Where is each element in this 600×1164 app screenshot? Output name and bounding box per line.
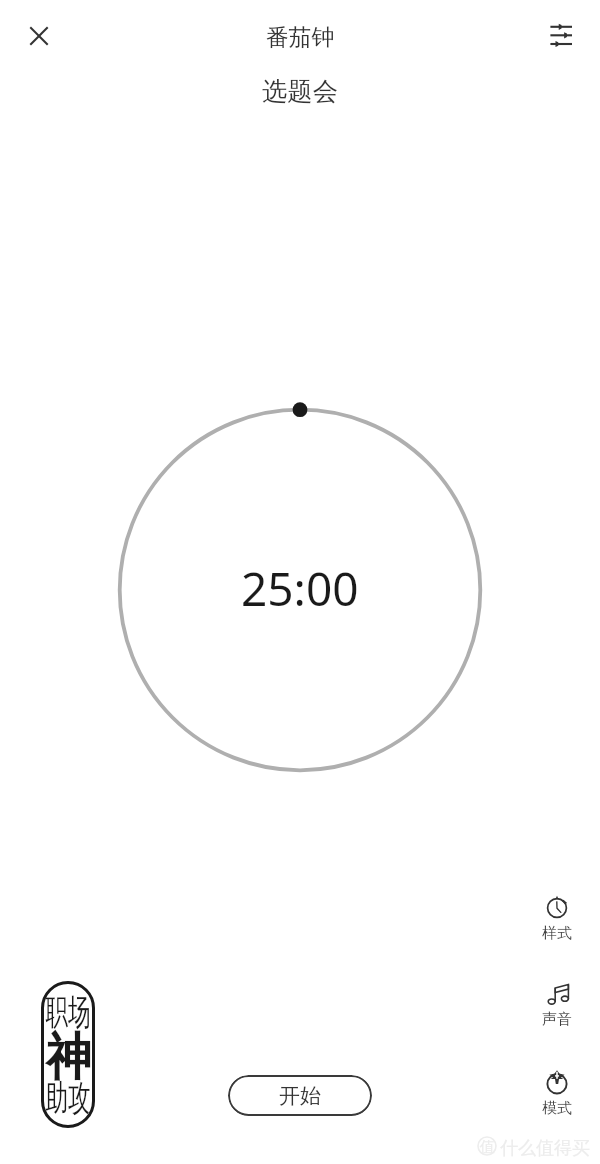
staticText: 助攻 — [45, 1076, 90, 1121]
staticText: 职场 — [45, 990, 90, 1035]
staticText: 声音 — [542, 1010, 572, 1029]
staticText: 样式 — [542, 924, 572, 943]
staticText: 模式 — [542, 1099, 572, 1118]
button[interactable]: 开始 — [228, 1075, 372, 1116]
button[interactable]: Close — [21, 18, 57, 54]
button[interactable]: 声音 — [537, 980, 577, 1029]
staticText: 25:00 — [241, 557, 359, 620]
staticText: 开始 — [279, 1083, 321, 1109]
button[interactable]: 模式 — [537, 1069, 577, 1118]
button[interactable]: 样式 — [537, 894, 577, 943]
staticText: 值 — [480, 1138, 495, 1157]
staticText: 选题会 — [0, 76, 600, 108]
staticText: 番茄钟 — [0, 23, 600, 52]
button[interactable]: Settings — [544, 17, 580, 53]
staticText: 神 — [46, 1026, 91, 1089]
staticText: 什么值得买 — [500, 1137, 590, 1160]
